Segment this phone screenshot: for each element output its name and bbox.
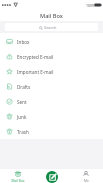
- staticText: 100%: [86, 3, 95, 8]
- button[interactable]: Inbox: [0, 34, 103, 49]
- staticText: Important E-mail: [17, 69, 54, 75]
- staticText: Drafts: [17, 84, 31, 90]
- staticText: Search: [44, 25, 57, 30]
- button[interactable]: Mail Box: [0, 169, 35, 183]
- button[interactable]: Junk: [0, 109, 103, 124]
- staticText: Mail Box: [40, 12, 63, 20]
- button[interactable]: Drafts: [0, 79, 103, 94]
- staticText: Inbox: [17, 39, 30, 45]
- staticText: Junk: [17, 114, 27, 120]
- staticText: Sent: [17, 99, 27, 105]
- staticText: Trash: [17, 129, 29, 135]
- staticText: Mail Box: [11, 178, 25, 182]
- button[interactable]: Important E-mail: [0, 64, 103, 79]
- button[interactable]: Search: [5, 23, 98, 31]
- button[interactable]: Me: [69, 169, 103, 183]
- button[interactable]: Sent: [0, 94, 103, 109]
- button[interactable]: Trash: [0, 124, 103, 139]
- staticText: Me: [84, 178, 89, 182]
- button[interactable]: Encrypted E-mail: [0, 49, 103, 64]
- staticText: Encrypted E-mail: [17, 54, 54, 60]
- button[interactable]: Compose: [46, 171, 58, 183]
